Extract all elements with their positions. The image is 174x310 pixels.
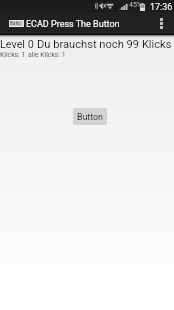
- staticText: Klicks: 1: [0, 51, 26, 59]
- staticText: Button: [10, 21, 23, 26]
- staticText: Button: [77, 112, 103, 122]
- staticText: 45%: [129, 1, 142, 9]
- button[interactable]: Button: [73, 108, 107, 125]
- staticText: ECAD Press The Button: [26, 19, 120, 30]
- staticText: 17:36: [150, 2, 173, 13]
- staticText: alle Klicks: 1: [28, 51, 66, 59]
- staticText: Level 0: [0, 38, 34, 51]
- button[interactable]: More options: [153, 12, 169, 34]
- staticText: Du brauchst noch 99 Klicks: [37, 38, 172, 51]
